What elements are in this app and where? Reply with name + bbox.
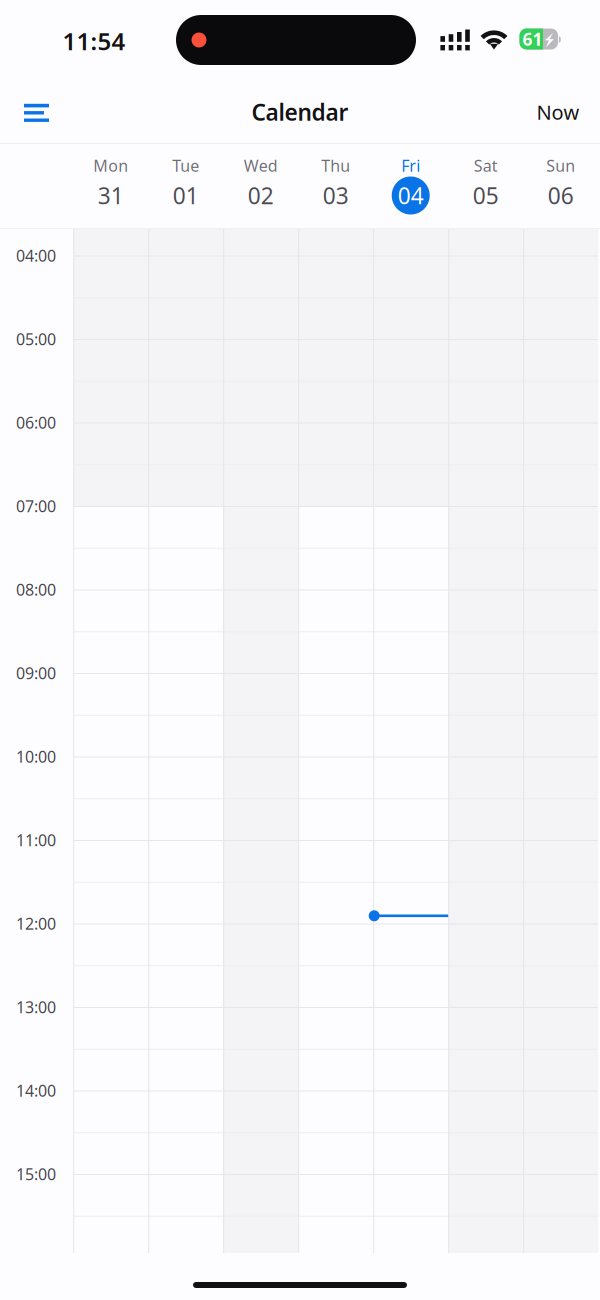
- staticText: 05:00: [16, 328, 56, 350]
- staticText: 14:00: [16, 1080, 56, 1101]
- staticText: 11:00: [16, 829, 56, 851]
- staticText: 03: [323, 180, 349, 210]
- staticText: Sat: [474, 155, 498, 176]
- staticText: Sun: [546, 155, 575, 176]
- staticText: 08:00: [16, 579, 56, 600]
- staticText: 04:00: [16, 245, 56, 266]
- staticText: Mon: [93, 155, 128, 176]
- staticText: 04: [398, 180, 424, 210]
- staticText: 13:00: [16, 996, 56, 1018]
- staticText: Fri: [401, 155, 420, 176]
- staticText: 10:00: [16, 746, 56, 767]
- staticText: 02: [248, 180, 274, 210]
- button[interactable]: Now: [528, 90, 588, 134]
- staticText: 11:54: [62, 25, 125, 57]
- staticText: 01: [173, 180, 199, 210]
- staticText: 07:00: [16, 495, 56, 517]
- staticText: Calendar: [251, 97, 348, 127]
- staticText: 61: [522, 27, 542, 50]
- staticText: Now: [536, 99, 579, 125]
- staticText: 12:00: [16, 913, 56, 934]
- button[interactable]: Menu: [12, 90, 61, 134]
- staticText: 06:00: [16, 412, 56, 433]
- staticText: Thu: [321, 155, 350, 176]
- staticText: Tue: [172, 155, 199, 176]
- staticText: 31: [98, 180, 124, 210]
- staticText: 05: [473, 180, 499, 210]
- staticText: 15:00: [16, 1163, 56, 1185]
- staticText: Wed: [244, 155, 278, 176]
- staticText: 09:00: [16, 662, 56, 684]
- staticText: 06: [548, 180, 574, 210]
